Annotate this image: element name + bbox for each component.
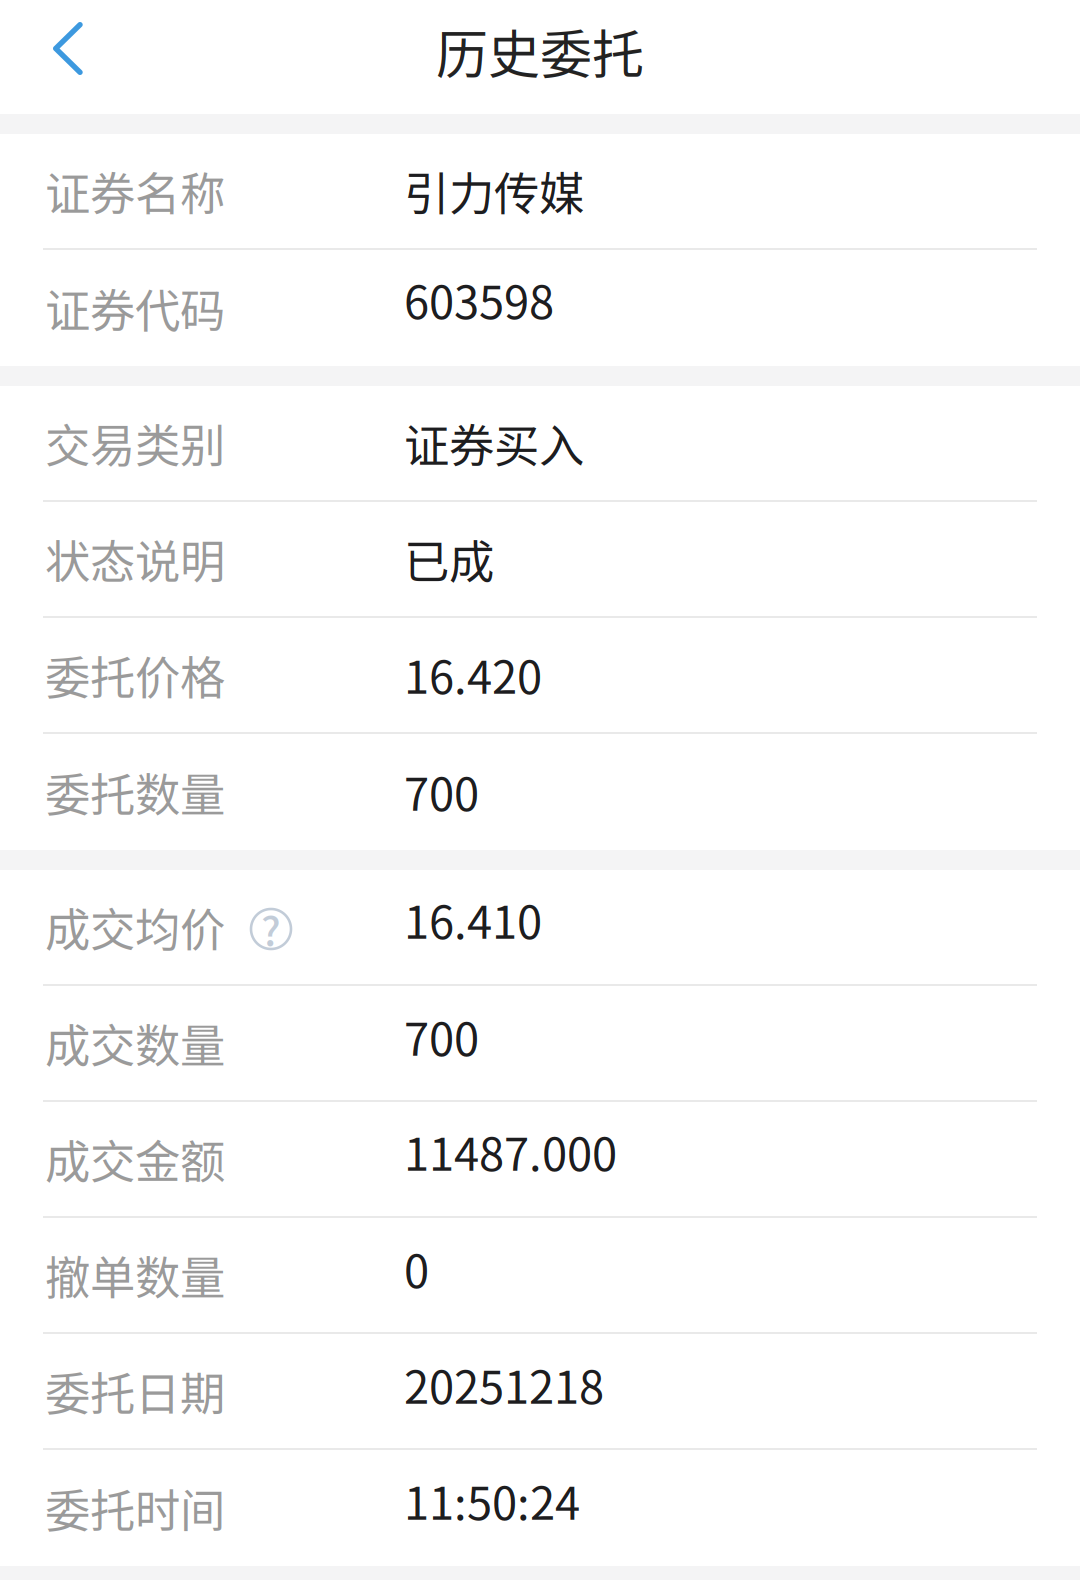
- staticText: 成交金额: [45, 1126, 225, 1192]
- button[interactable]: Back: [0, 0, 138, 114]
- staticText: 交易类别: [45, 410, 225, 476]
- staticText: 11487.000: [404, 1118, 617, 1184]
- staticText: 603598: [404, 266, 554, 332]
- button[interactable]: 关于成交均价: [251, 909, 291, 949]
- staticText: 委托数量: [45, 759, 225, 825]
- staticText: 成交均价: [45, 894, 225, 960]
- staticText: 状态说明: [45, 526, 225, 592]
- staticText: 证券买入: [404, 410, 584, 476]
- staticText: 引力传媒: [404, 158, 584, 224]
- staticText: 历史委托: [436, 13, 644, 89]
- staticText: 撤单数量: [45, 1242, 225, 1308]
- staticText: 成交数量: [45, 1010, 225, 1076]
- staticText: 16.410: [404, 886, 542, 952]
- staticText: 700: [404, 758, 479, 824]
- staticText: 0: [404, 1235, 429, 1301]
- staticText: 700: [404, 1003, 479, 1069]
- staticText: 委托日期: [45, 1358, 225, 1424]
- staticText: 已成: [404, 526, 494, 592]
- staticText: 委托价格: [45, 642, 225, 708]
- staticText: 16.420: [404, 641, 542, 707]
- staticText: ?: [261, 899, 281, 957]
- staticText: 委托时间: [45, 1475, 225, 1541]
- staticText: 证券代码: [45, 275, 225, 341]
- staticText: 证券名称: [45, 158, 225, 224]
- staticText: 20251218: [404, 1351, 604, 1417]
- staticText: 11:50:24: [404, 1467, 580, 1533]
